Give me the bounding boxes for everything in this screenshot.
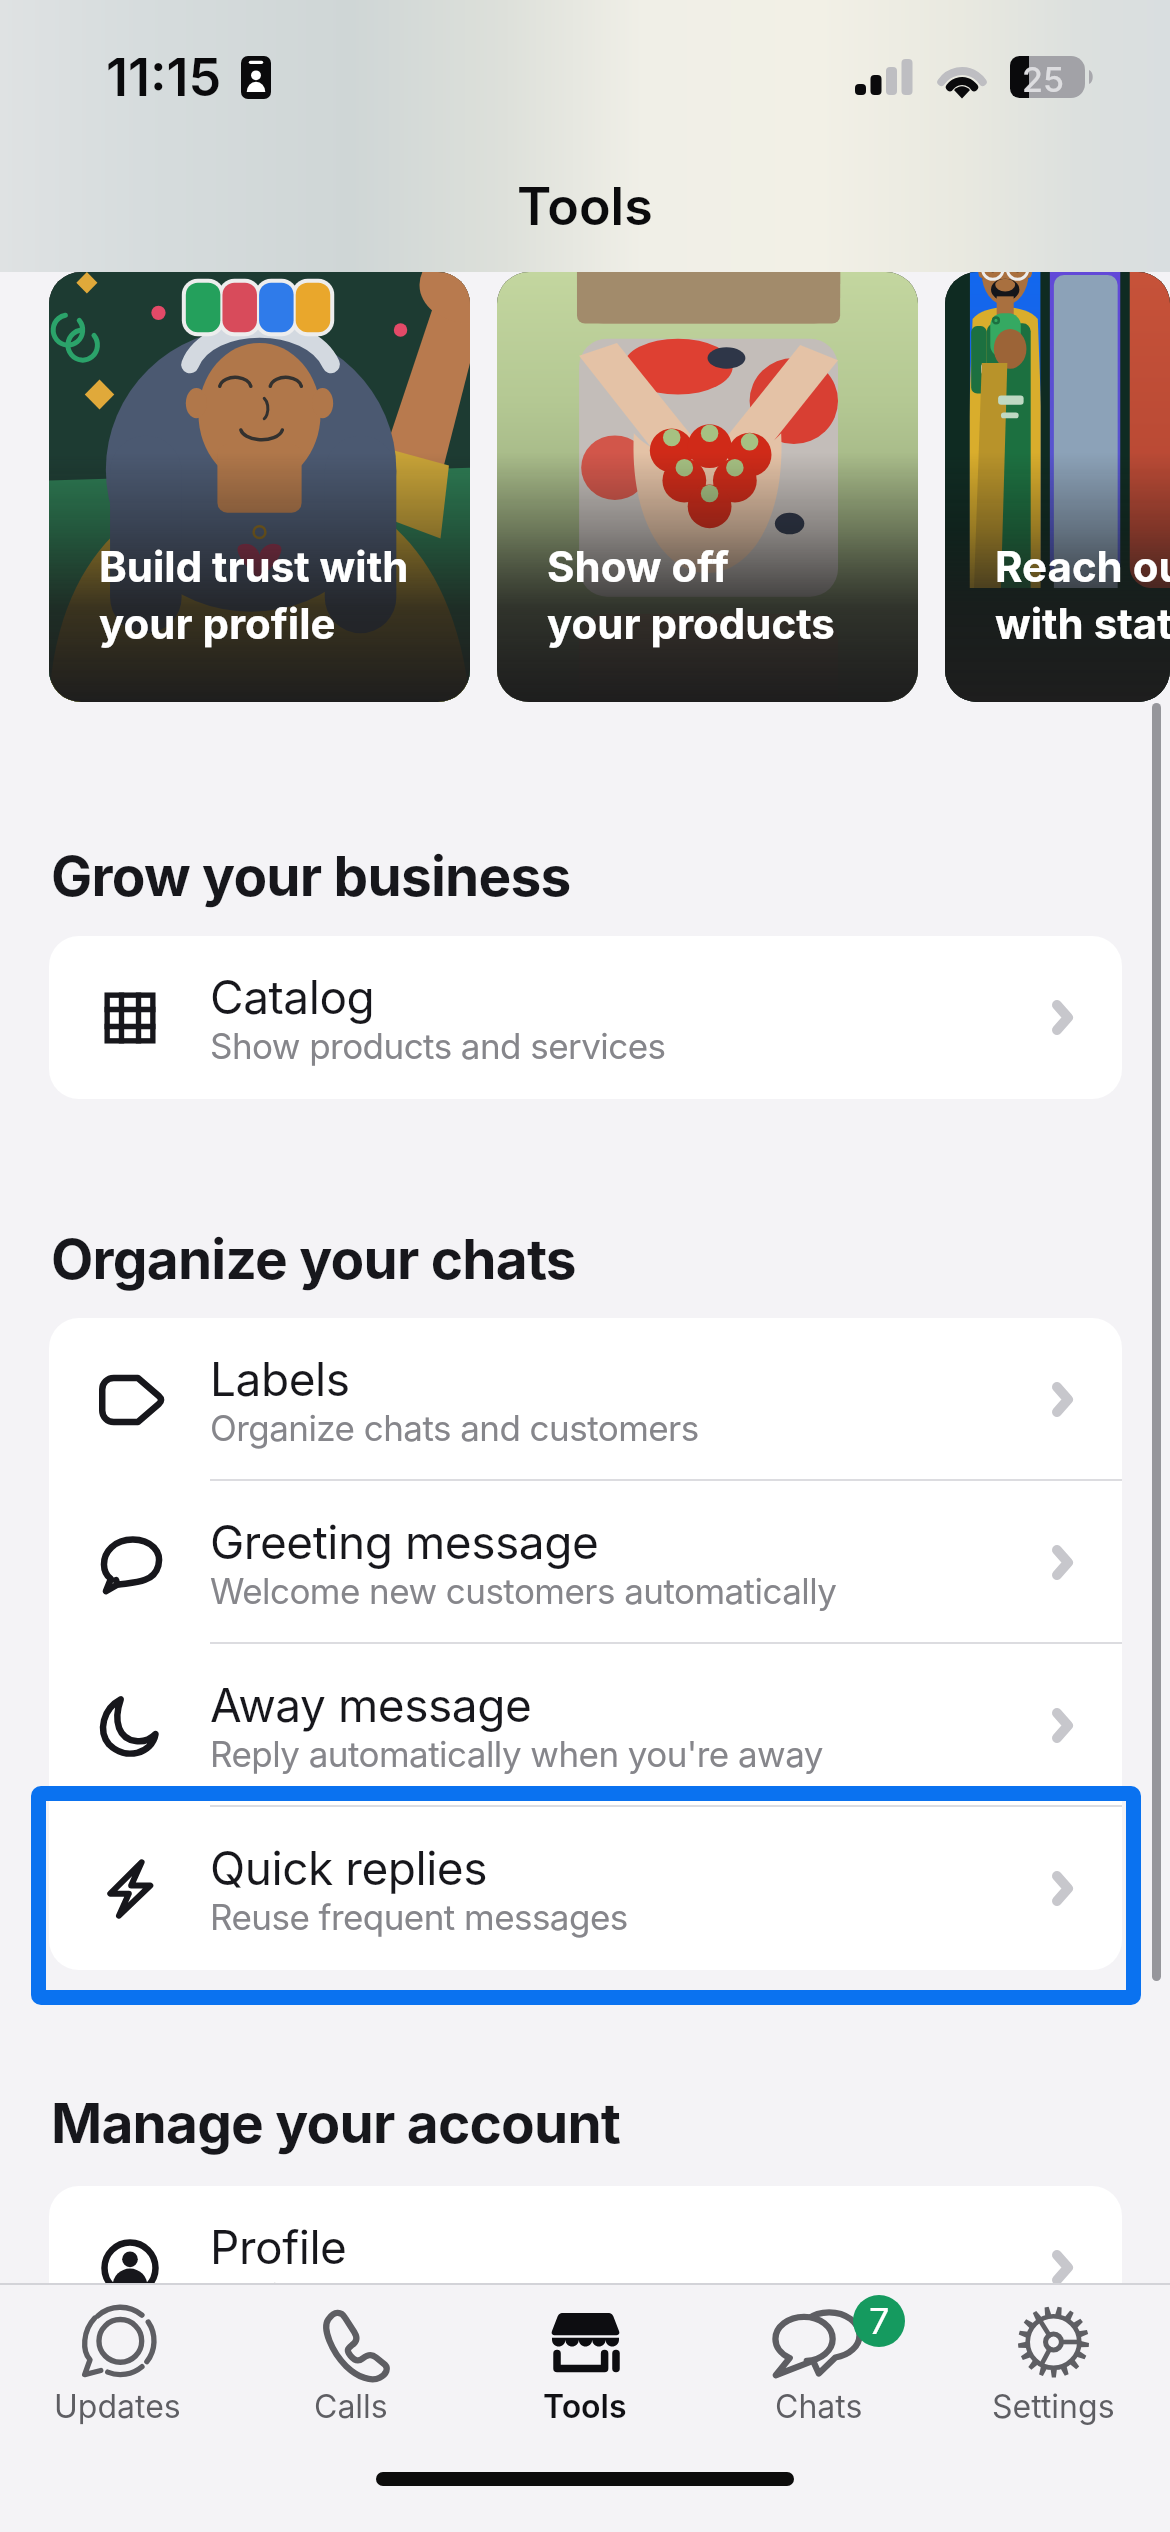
staticText: Build trust with your profile [99,541,409,650]
staticText: Manage your account [51,2090,621,2157]
button[interactable]: Profile [49,2186,1122,2349]
staticText: Organize your chats [51,1226,576,1293]
staticText: Labels [210,1351,350,1407]
button[interactable]: Reach out with status [945,272,1170,702]
button[interactable]: Calls [234,2285,468,2426]
staticText: Quick replies [210,1840,488,1896]
button[interactable]: Tools [468,2285,702,2426]
staticText: 11:15 [106,46,222,109]
staticText: Organize chats and customers [210,1407,699,1449]
staticText: Show products and services [210,1025,666,1067]
staticText: Show off your products [547,541,835,650]
staticText: Greeting message [210,1514,599,1570]
staticText: Settings [992,2387,1115,2426]
staticText: Calls [314,2387,388,2426]
staticText: Grow your business [51,843,571,910]
staticText: Business name, category, hours [210,2275,724,2317]
staticText: Updates [54,2387,181,2426]
button[interactable]: Chats [702,2285,936,2426]
staticText: Welcome new customers automatically [210,1570,837,1612]
staticText: 7 [869,2299,890,2343]
button[interactable]: Away message [49,1644,1122,1807]
staticText: Reuse frequent messages [210,1896,628,1938]
staticText: Chats [775,2387,863,2426]
staticText: Tools [517,175,653,238]
button[interactable]: Labels [49,1318,1122,1481]
staticText: 25 [1022,59,1064,100]
staticText: Tools [543,2387,627,2426]
staticText: Reach out with status [995,541,1170,650]
button[interactable]: Show off your products [497,272,918,702]
button[interactable]: Catalog [49,936,1122,1099]
button[interactable]: Settings [936,2285,1170,2426]
staticText: Away message [210,1677,532,1733]
staticText: Profile [210,2219,347,2275]
button[interactable]: Quick replies [49,1807,1122,1970]
staticText: Reply automatically when you're away [210,1733,823,1775]
button[interactable]: Greeting message [49,1481,1122,1644]
button[interactable]: Updates [0,2285,234,2426]
staticText: Catalog [210,969,375,1025]
button[interactable]: Build trust with your profile [49,272,470,702]
